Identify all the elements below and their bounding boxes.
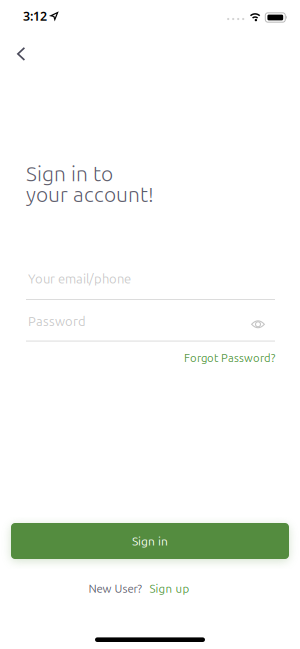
staticText: Sign in to your account!	[26, 163, 154, 204]
button[interactable]: Sign in	[0, 523, 300, 559]
staticText: Sign up	[149, 582, 189, 595]
button[interactable]: Password	[0, 300, 300, 342]
staticText: Sign in	[132, 534, 168, 548]
button[interactable]: Show password	[251, 317, 275, 326]
staticText: New User?	[88, 582, 141, 595]
button[interactable]: Sign up	[149, 582, 189, 595]
button[interactable]: Back	[0, 39, 26, 69]
button[interactable]: Forgot Password?	[184, 352, 275, 364]
staticText: Your email/phone	[28, 271, 131, 286]
button[interactable]: Your email/phone	[0, 271, 300, 300]
staticText: 3:12	[23, 8, 47, 24]
staticText: Password	[28, 314, 86, 329]
staticText: Forgot Password?	[184, 352, 275, 364]
